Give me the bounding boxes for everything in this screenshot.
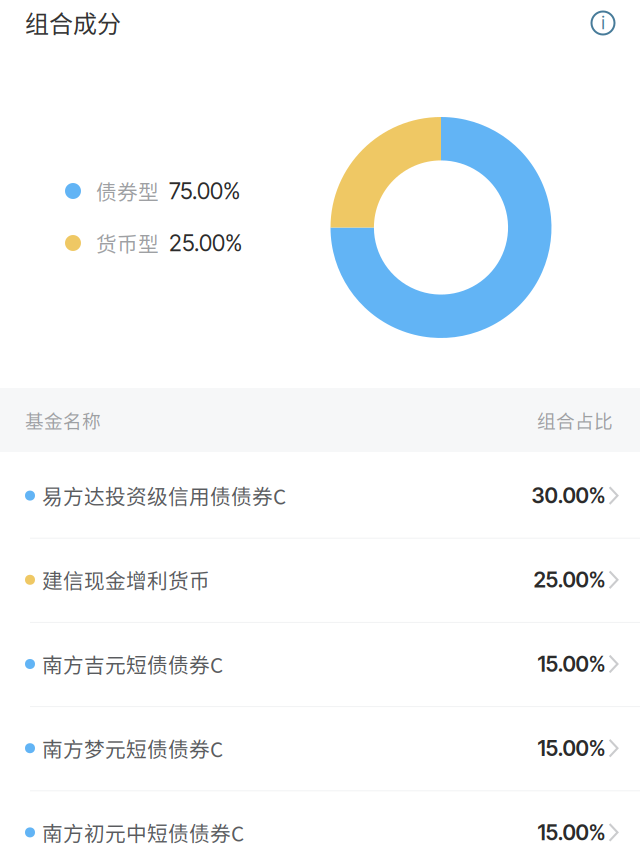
- staticText: 25.00%: [169, 229, 242, 257]
- button[interactable]: 南方吉元短债债券C: [0, 622, 640, 706]
- staticText: 75.00%: [169, 177, 240, 205]
- staticText: 基金名称: [25, 406, 101, 433]
- staticText: 25.00%: [533, 567, 605, 593]
- staticText: 建信现金增利货币: [42, 565, 210, 595]
- staticText: 南方初元中短债债券C: [42, 817, 244, 847]
- staticText: 易方达投资级信用债债券C: [42, 481, 286, 510]
- button[interactable]: 组合成分: [25, 5, 121, 40]
- staticText: 30.00%: [531, 483, 605, 508]
- staticText: 债券型: [96, 176, 159, 206]
- staticText: 南方梦元短债债券C: [42, 733, 223, 763]
- button[interactable]: Info: [583, 3, 623, 43]
- staticText: 南方吉元短债债券C: [42, 649, 223, 679]
- staticText: 15.00%: [537, 819, 605, 845]
- button[interactable]: 建信现金增利货币: [0, 538, 640, 622]
- staticText: 15.00%: [537, 651, 605, 677]
- staticText: 组合成分: [25, 5, 121, 40]
- staticText: 组合占比: [537, 406, 613, 433]
- button[interactable]: 南方初元中短债债券C: [0, 790, 640, 861]
- staticText: i: [601, 12, 605, 33]
- staticText: 货币型: [96, 228, 159, 258]
- staticText: 15.00%: [537, 735, 605, 761]
- button[interactable]: 易方达投资级信用债债券C: [0, 453, 640, 538]
- button[interactable]: 南方梦元短债债券C: [0, 706, 640, 790]
